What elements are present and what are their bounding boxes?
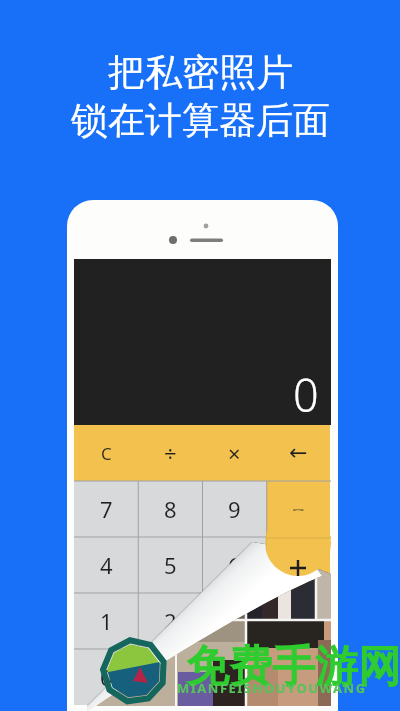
button[interactable]: [202, 649, 266, 705]
staticText: 免费手游网: [186, 640, 400, 694]
button[interactable]: 6: [202, 537, 266, 593]
button[interactable]: 9: [202, 481, 266, 537]
button[interactable]: 1: [74, 593, 138, 649]
button[interactable]: ×: [202, 425, 266, 481]
staticText: ÷: [164, 438, 177, 468]
staticText: 0: [100, 662, 113, 692]
button[interactable]: 7: [74, 481, 138, 537]
staticText: 7: [100, 494, 113, 524]
staticText: −: [292, 494, 305, 524]
staticText: 4: [100, 550, 113, 580]
staticText: C: [101, 442, 112, 465]
button[interactable]: .: [138, 649, 202, 705]
button[interactable]: 3: [202, 593, 266, 649]
button[interactable]: C: [74, 425, 138, 481]
staticText: 5: [164, 550, 177, 580]
button[interactable]: 0: [74, 649, 138, 705]
staticText: 1: [100, 606, 113, 636]
staticText: +: [292, 550, 305, 580]
staticText: 2: [164, 606, 177, 636]
button[interactable]: 5: [138, 537, 202, 593]
staticText: MIANFEISHOUYOUWANG: [177, 679, 367, 697]
staticText: 锁在计算器后面: [71, 97, 330, 144]
button[interactable]: −: [266, 481, 330, 537]
staticText: 把私密照片: [108, 49, 293, 96]
staticText: 6: [228, 550, 241, 580]
button[interactable]: ÷: [138, 425, 202, 481]
button[interactable]: ←: [266, 425, 330, 481]
staticText: 0: [293, 364, 319, 425]
staticText: =: [292, 606, 305, 636]
button[interactable]: 2: [138, 593, 202, 649]
staticText: 3: [228, 606, 241, 636]
button[interactable]: [266, 649, 330, 705]
button[interactable]: 0: [74, 259, 331, 425]
button[interactable]: 8: [138, 481, 202, 537]
staticText: 8: [164, 494, 177, 524]
button[interactable]: =: [266, 593, 330, 649]
button[interactable]: +: [266, 537, 330, 593]
staticText: ×: [228, 438, 241, 468]
staticText: ←: [289, 440, 308, 466]
button[interactable]: 4: [74, 537, 138, 593]
staticText: 9: [228, 494, 241, 524]
